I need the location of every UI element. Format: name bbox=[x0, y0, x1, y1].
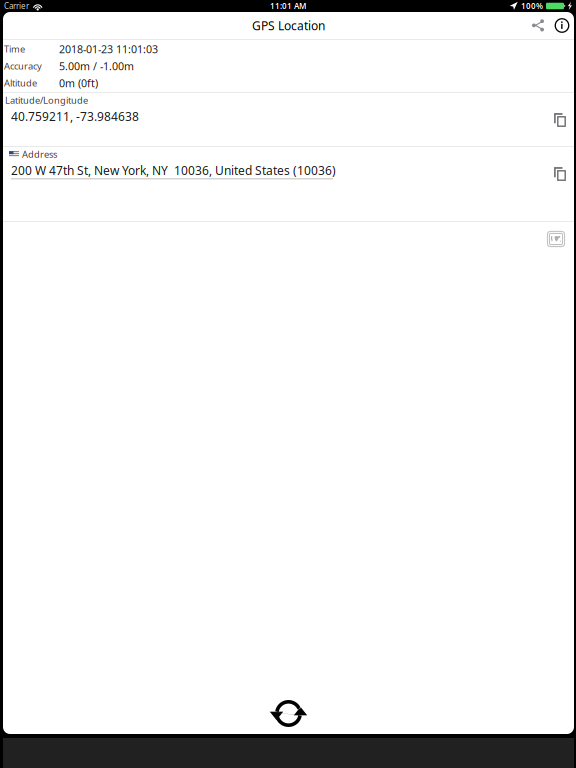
button[interactable]: Info bbox=[551, 12, 573, 39]
button[interactable]: Show map bbox=[544, 227, 568, 251]
staticText: GPS Location bbox=[252, 17, 325, 33]
button[interactable]: Address bbox=[3, 147, 574, 221]
button[interactable]: Latitude/Longitude bbox=[3, 93, 574, 146]
staticText: 200 W 47th St, New York, NY 10036, Unite… bbox=[11, 162, 336, 178]
staticText: Address bbox=[22, 148, 57, 160]
staticText: Altitude bbox=[4, 77, 37, 89]
staticText: 0m (0ft) bbox=[59, 76, 98, 90]
staticText: Accuracy bbox=[4, 60, 42, 72]
button[interactable]: Refresh bbox=[253, 690, 323, 734]
staticText: Carrier bbox=[4, 1, 29, 11]
button[interactable]: Share bbox=[525, 12, 551, 39]
staticText: 11:01 AM bbox=[270, 1, 306, 11]
staticText: 5.00m / -1.00m bbox=[59, 59, 134, 73]
staticText: 40.759211, -73.984638 bbox=[11, 108, 139, 124]
staticText: Time bbox=[4, 43, 25, 55]
staticText: Latitude/Longitude bbox=[5, 94, 88, 106]
staticText: 100% bbox=[521, 1, 543, 11]
staticText: 2018-01-23 11:01:03 bbox=[59, 42, 158, 56]
